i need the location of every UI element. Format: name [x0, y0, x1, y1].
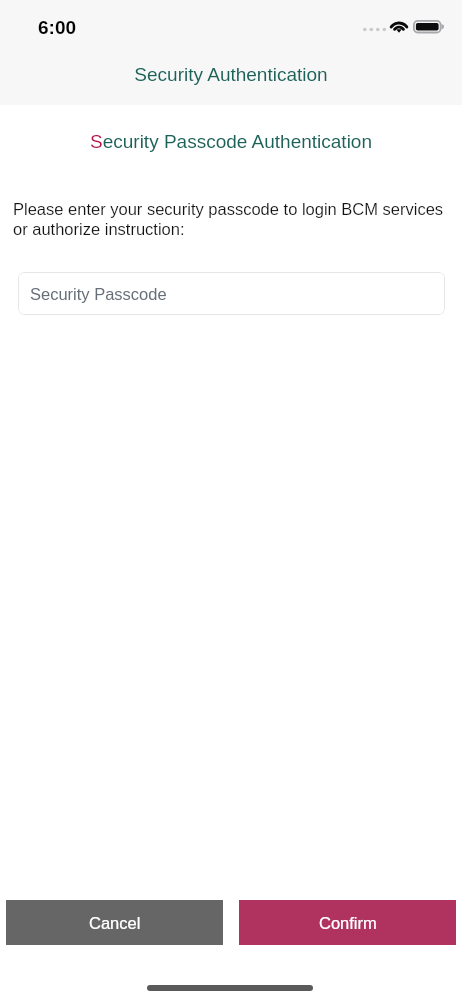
staticText: Please enter your security passcode to l…	[13, 200, 454, 239]
button[interactable]: Security Passcode	[18, 272, 445, 315]
staticText: Security Passcode Authentication	[0, 131, 462, 152]
button[interactable]: Confirm	[239, 900, 456, 945]
staticText: Confirm	[319, 914, 377, 932]
staticText: Security Passcode	[30, 285, 167, 303]
staticText: Cancel	[89, 914, 141, 932]
button[interactable]: Cancel	[6, 900, 223, 945]
staticText: 6:00	[38, 17, 77, 38]
staticText: Security Authentication	[0, 64, 462, 85]
